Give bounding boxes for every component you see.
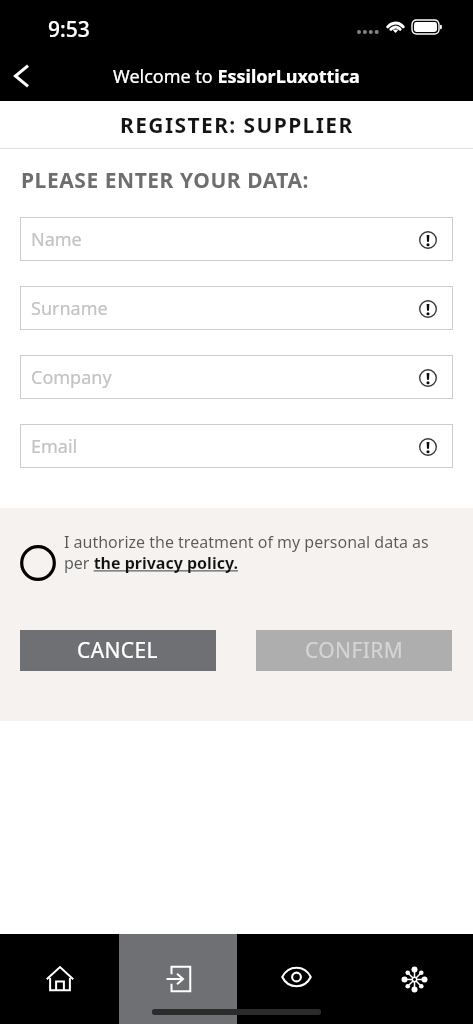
staticText: Surname [31, 296, 108, 321]
staticText: Company [31, 365, 112, 390]
button[interactable]: Surname [20, 286, 453, 330]
button[interactable]: Login [119, 934, 237, 1024]
button[interactable]: Email [20, 424, 453, 468]
staticText: 9:53 [48, 15, 90, 44]
button[interactable]: Home [0, 934, 119, 1024]
button[interactable]: Preview [237, 934, 355, 1024]
button[interactable]: CANCEL [20, 630, 216, 671]
button[interactable]: Company [20, 355, 453, 399]
staticText: Email [31, 434, 78, 459]
button[interactable]: CONFIRM [256, 630, 452, 671]
staticText: PLEASE ENTER YOUR DATA: [21, 166, 310, 195]
button[interactable]: Authorize the treatment of my personal d… [20, 545, 56, 581]
staticText: CANCEL [77, 636, 159, 665]
staticText: REGISTER: SUPPLIER [120, 111, 354, 140]
staticText: CONFIRM [305, 636, 404, 665]
staticText: Welcome to EssilorLuxottica [113, 64, 360, 89]
button[interactable]: Network [355, 934, 473, 1024]
button[interactable]: Back [1, 56, 41, 96]
staticText: Name [31, 227, 82, 252]
staticText: I authorize the treatment of my personal… [64, 531, 429, 574]
button[interactable]: Name [20, 217, 453, 261]
